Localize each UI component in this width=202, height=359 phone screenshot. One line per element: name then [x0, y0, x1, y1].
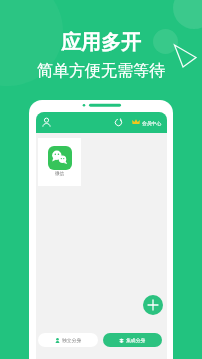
button[interactable]: 集成分身 — [103, 333, 162, 347]
button[interactable]: Add — [143, 295, 163, 315]
staticText: 微信 — [55, 171, 65, 177]
staticText: 简单方便无需等待 — [37, 61, 165, 81]
button[interactable]: 会员中心 — [132, 119, 162, 127]
button[interactable]: 独立分身 — [38, 333, 98, 347]
button[interactable]: Profile — [41, 117, 52, 128]
staticText: 会员中心 — [142, 120, 162, 126]
staticText: 集成分身 — [126, 337, 146, 343]
staticText: 应用多开 — [61, 30, 141, 55]
button[interactable]: 微信 — [38, 138, 81, 186]
button[interactable]: Refresh — [114, 118, 123, 127]
staticText: 独立分身 — [62, 337, 82, 343]
